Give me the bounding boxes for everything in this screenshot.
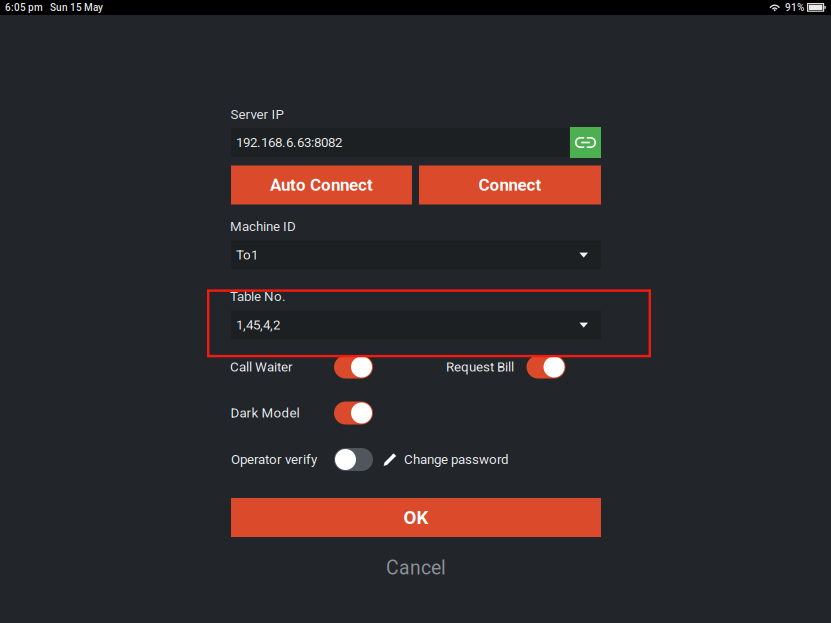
button[interactable]: Connect — [419, 165, 601, 204]
staticText: Call Waiter — [230, 359, 293, 375]
staticText: Machine ID — [230, 219, 296, 234]
staticText: 6:05 pm — [5, 2, 43, 13]
button[interactable]: To1 — [231, 240, 601, 269]
button[interactable]: Request Bill, on — [526, 355, 565, 378]
staticText: 1,45,4,2 — [236, 317, 280, 333]
button[interactable]: Dark Model, on — [334, 401, 373, 424]
staticText: Connect — [478, 175, 541, 195]
staticText: 91% — [785, 2, 804, 13]
staticText: To1 — [236, 247, 258, 263]
staticText: Dark Model — [230, 405, 299, 421]
button[interactable]: Auto Connect — [231, 165, 412, 204]
staticText: Cancel — [386, 557, 446, 579]
staticText: Auto Connect — [270, 175, 373, 195]
staticText: OK — [403, 507, 428, 528]
button[interactable]: Cancel — [356, 555, 476, 581]
button[interactable]: Operator verify, off — [334, 448, 373, 471]
staticText: Sun 15 May — [50, 2, 103, 13]
staticText: Request Bill — [446, 359, 514, 375]
staticText: Change password — [404, 452, 509, 467]
button[interactable]: 1,45,4,2 — [231, 310, 601, 339]
button[interactable]: Call Waiter, on — [334, 355, 373, 378]
button[interactable]: Change password — [383, 452, 509, 467]
button[interactable]: OK — [231, 498, 601, 537]
button[interactable]: Open link — [570, 127, 601, 158]
staticText: 192.168.6.63:8082 — [236, 135, 342, 150]
staticText: Operator verify — [231, 452, 317, 467]
staticText: Server IP — [230, 107, 283, 122]
staticText: Table No. — [230, 289, 286, 304]
